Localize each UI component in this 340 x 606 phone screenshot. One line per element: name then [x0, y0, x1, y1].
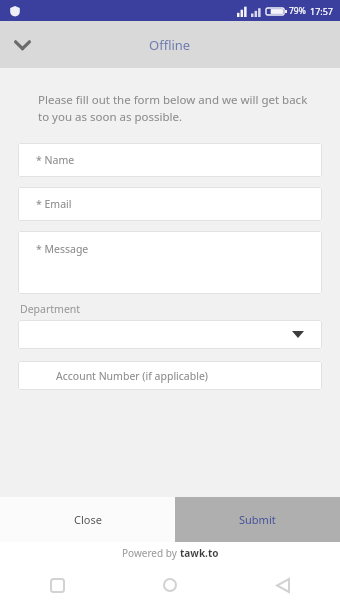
button[interactable]: Collapse	[0, 23, 44, 67]
staticText: tawk.to	[180, 546, 219, 560]
staticText: 17:57	[310, 5, 334, 17]
staticText: * Message	[36, 242, 89, 256]
button[interactable]: Recent apps	[34, 564, 80, 606]
button[interactable]: Back	[260, 564, 306, 606]
button[interactable]: Submit	[175, 497, 340, 542]
button[interactable]: Close	[0, 497, 175, 542]
staticText: * Email	[36, 197, 72, 211]
staticText: Offline	[149, 36, 191, 54]
button[interactable]: * Email	[18, 187, 322, 221]
button[interactable]: Home	[147, 564, 193, 606]
button[interactable]: * Name	[18, 143, 322, 177]
button[interactable]: * Message	[18, 231, 322, 294]
staticText: * Name	[36, 153, 75, 167]
staticText: Submit	[239, 512, 276, 527]
staticText: Please fill out the form below and we wi…	[38, 92, 310, 125]
staticText: 79%	[289, 5, 306, 17]
staticText: Account Number (if applicable)	[56, 369, 208, 383]
button[interactable]: Account Number (if applicable)	[18, 361, 322, 390]
staticText: Close	[74, 512, 102, 527]
button[interactable]: Select department	[18, 320, 322, 349]
staticText: Department	[20, 302, 81, 316]
staticText: Powered by	[122, 546, 180, 560]
